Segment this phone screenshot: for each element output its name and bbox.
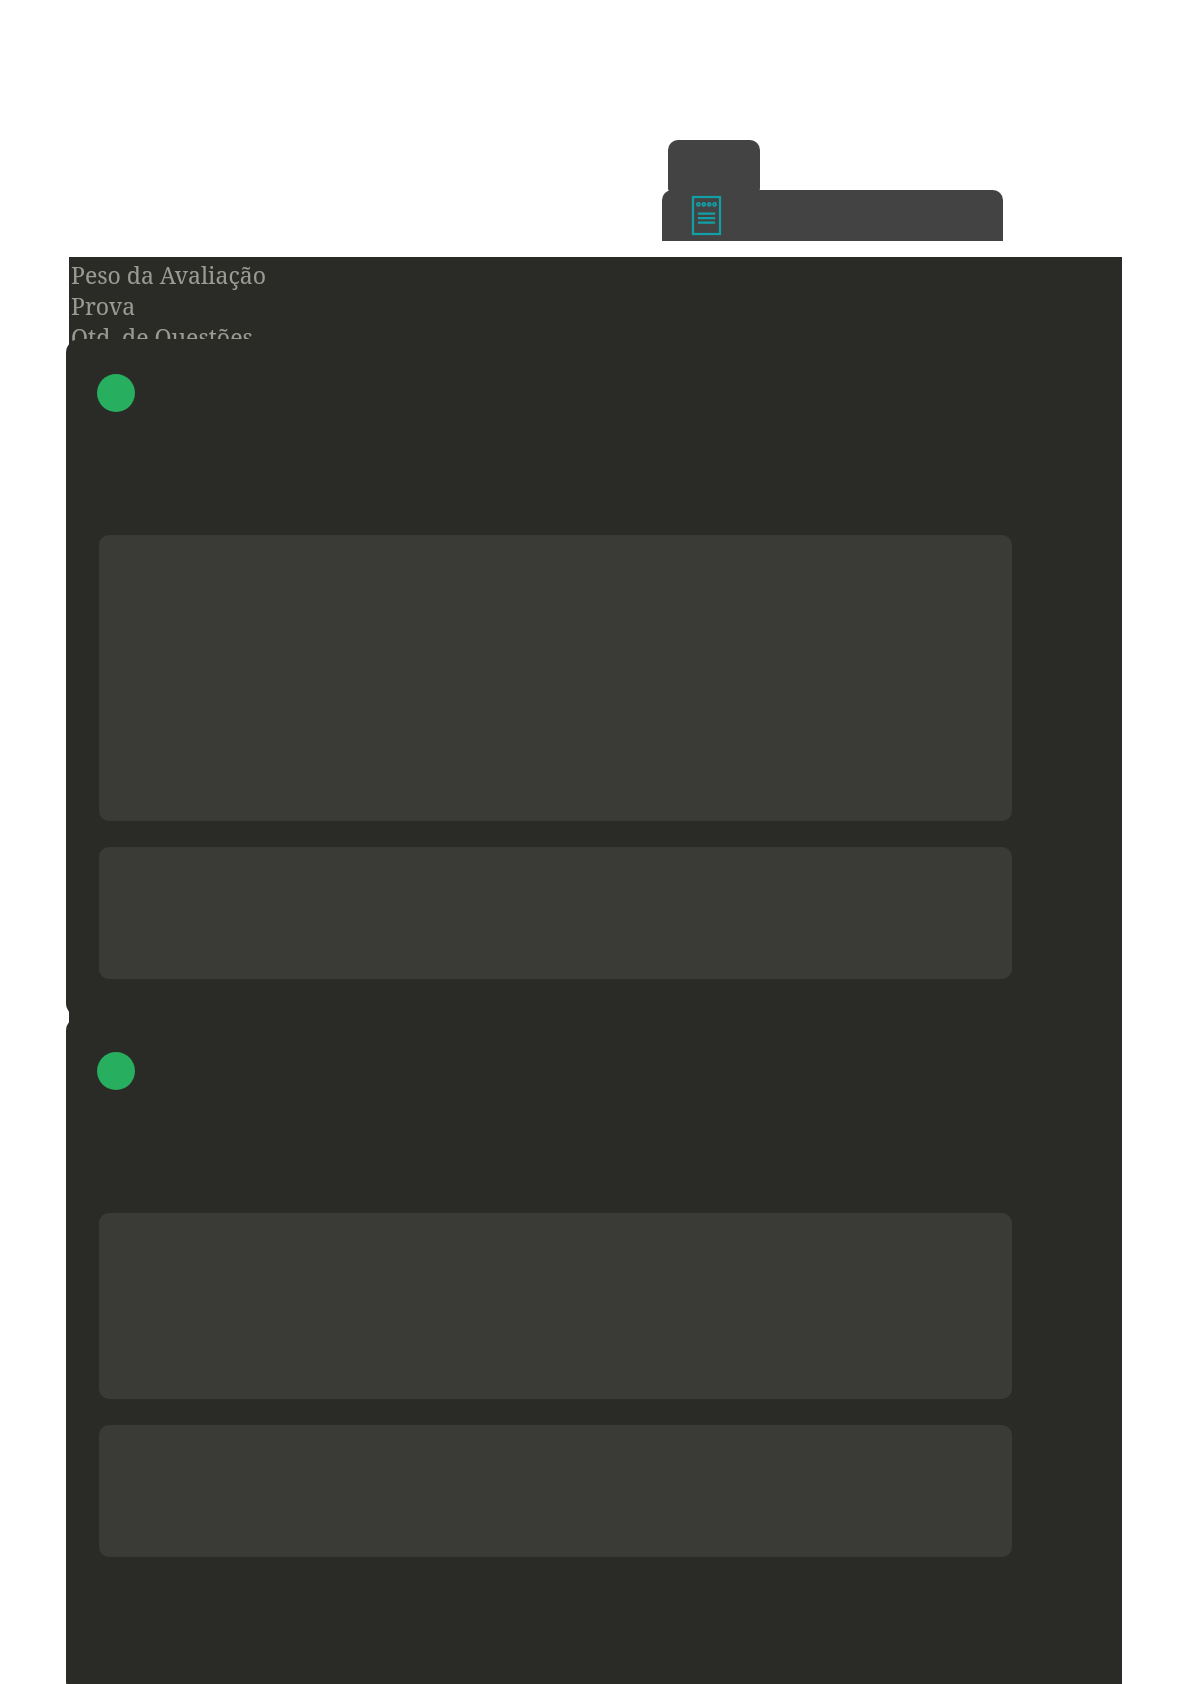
staticText: Prova <box>71 290 136 321</box>
button[interactable] <box>66 1017 1043 1684</box>
button[interactable] <box>668 140 760 192</box>
staticText: Qtd. de Questões <box>71 321 253 352</box>
button[interactable] <box>66 339 1043 1017</box>
button[interactable]: Avaliações <box>686 195 726 235</box>
staticText: Nota <box>71 352 123 383</box>
staticText: Peso da Avaliação <box>71 259 266 290</box>
